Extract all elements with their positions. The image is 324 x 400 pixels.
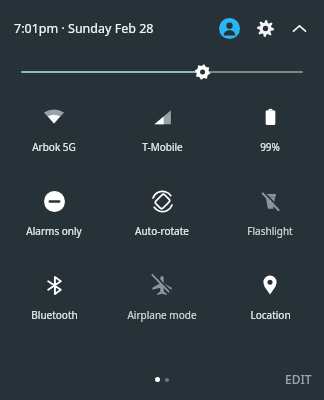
staticText: EDIT <box>285 371 312 387</box>
button[interactable]: Wi-Fi <box>0 102 108 156</box>
button[interactable]: Battery <box>216 102 324 156</box>
staticText: Alarms only <box>26 224 82 238</box>
button[interactable]: Flashlight <box>216 186 324 240</box>
staticText: Arbok 5G <box>32 140 76 154</box>
staticText: T-Mobile <box>142 140 183 154</box>
button[interactable]: Mobile data <box>108 102 216 156</box>
button[interactable]: Collapse <box>284 13 314 43</box>
button[interactable]: Airplane mode <box>108 270 216 324</box>
button[interactable]: Settings <box>250 13 280 43</box>
staticText: 99% <box>260 140 280 154</box>
staticText: Bluetooth <box>31 308 78 322</box>
staticText: Flashlight <box>247 224 293 238</box>
button[interactable]: Location <box>216 270 324 324</box>
button[interactable]: Auto-rotate <box>108 186 216 240</box>
button[interactable]: Brightness <box>0 56 324 88</box>
button[interactable]: User account <box>214 13 244 43</box>
staticText: Location <box>250 308 291 322</box>
button[interactable]: Bluetooth <box>0 270 108 324</box>
button[interactable]: EDIT <box>285 371 312 387</box>
button[interactable]: Do not disturb: Alarms only <box>0 186 108 240</box>
staticText: 7:01pm · Sunday Feb 28 <box>14 20 154 37</box>
staticText: Auto-rotate <box>135 224 189 238</box>
staticText: Airplane mode <box>127 308 197 322</box>
